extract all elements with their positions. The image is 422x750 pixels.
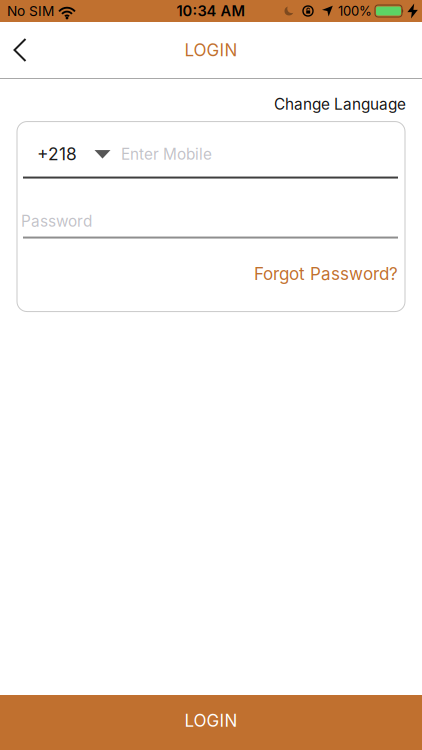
- staticText: +218: [37, 144, 77, 165]
- button[interactable]: Change Language: [274, 95, 406, 114]
- staticText: LOGIN: [184, 40, 237, 60]
- staticText: Forgot Password?: [254, 264, 398, 284]
- staticText: LOGIN: [184, 710, 237, 731]
- staticText: Change Language: [274, 95, 406, 114]
- staticText: No SIM: [7, 3, 54, 19]
- button[interactable]: LOGIN: [0, 695, 422, 750]
- button[interactable]: Country code: [37, 144, 111, 165]
- staticText: Password: [21, 212, 92, 231]
- button[interactable]: Back: [0, 23, 37, 76]
- staticText: 10:34 AM: [176, 2, 245, 20]
- staticText: 100%: [338, 3, 372, 19]
- button[interactable]: Forgot Password?: [254, 264, 398, 284]
- staticText: Enter Mobile: [121, 145, 212, 163]
